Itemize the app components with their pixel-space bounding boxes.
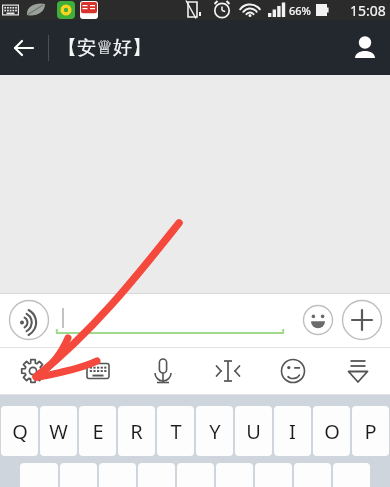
button[interactable]: Settings — [0, 348, 65, 394]
button[interactable] — [20, 463, 58, 487]
button[interactable] — [60, 463, 97, 487]
button[interactable] — [333, 463, 370, 487]
button[interactable]: More — [340, 298, 384, 342]
button[interactable] — [177, 463, 214, 487]
staticText: 【安♕好】 — [58, 36, 152, 60]
staticText: P — [364, 418, 377, 445]
staticText: E — [92, 418, 104, 445]
button[interactable]: Y — [196, 406, 233, 456]
button[interactable] — [294, 463, 331, 487]
button[interactable]: W — [40, 406, 77, 456]
button[interactable] — [255, 463, 292, 487]
staticText: 15:08 — [350, 1, 386, 20]
button[interactable]: Emoji — [298, 300, 338, 340]
button[interactable] — [99, 463, 136, 487]
button[interactable]: Keyboard — [65, 348, 130, 394]
staticText: T — [170, 418, 182, 445]
button[interactable]: U — [235, 406, 272, 456]
button[interactable] — [56, 298, 284, 342]
staticText: R — [130, 418, 143, 445]
button[interactable]: Back — [0, 24, 48, 72]
button[interactable] — [138, 463, 175, 487]
staticText: Q — [12, 418, 28, 445]
button[interactable]: E — [79, 406, 116, 456]
button[interactable]: Q — [1, 406, 38, 456]
staticText: 66% — [289, 3, 311, 18]
staticText: Y — [209, 418, 221, 445]
button[interactable]: I — [274, 406, 311, 456]
button[interactable]: Move cursor — [195, 348, 260, 394]
staticText: U — [246, 418, 261, 445]
staticText: O — [324, 418, 340, 445]
button[interactable]: Sticker — [260, 348, 325, 394]
staticText: W — [49, 418, 68, 445]
staticText: I — [289, 418, 296, 445]
button[interactable]: Profile — [340, 23, 390, 73]
button[interactable]: R — [118, 406, 155, 456]
button[interactable]: O — [313, 406, 350, 456]
button[interactable]: P — [352, 406, 389, 456]
button[interactable]: Hide keyboard — [325, 348, 390, 394]
button[interactable] — [216, 463, 253, 487]
button[interactable]: Voice — [130, 348, 195, 394]
button[interactable]: Voice input — [8, 299, 50, 341]
button[interactable]: T — [157, 406, 194, 456]
